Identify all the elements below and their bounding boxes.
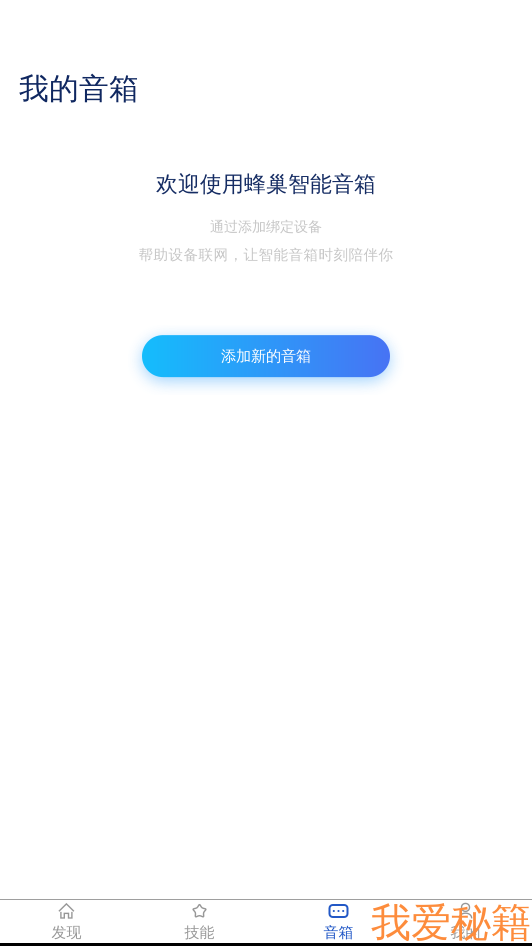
staticText: 我的音箱 — [19, 70, 139, 107]
button[interactable]: 我的 — [399, 900, 532, 943]
staticText: 我爱秘籍 — [371, 898, 531, 946]
staticText: 我的 — [450, 923, 480, 942]
staticText: 添加新的音箱 — [221, 346, 311, 366]
button[interactable]: 发现 — [0, 900, 133, 943]
staticText: 帮助设备联网，让智能音箱时刻陪伴你 — [138, 246, 393, 264]
button[interactable]: 音箱 — [266, 900, 399, 943]
button[interactable]: 添加新的音箱 — [142, 335, 390, 377]
staticText: 通过添加绑定设备 — [210, 218, 322, 236]
staticText: 技能 — [184, 923, 214, 942]
staticText: 发现 — [51, 923, 81, 942]
button[interactable]: 技能 — [133, 900, 266, 943]
staticText: 音箱 — [323, 923, 353, 942]
staticText: 欢迎使用蜂巢智能音箱 — [156, 170, 376, 198]
